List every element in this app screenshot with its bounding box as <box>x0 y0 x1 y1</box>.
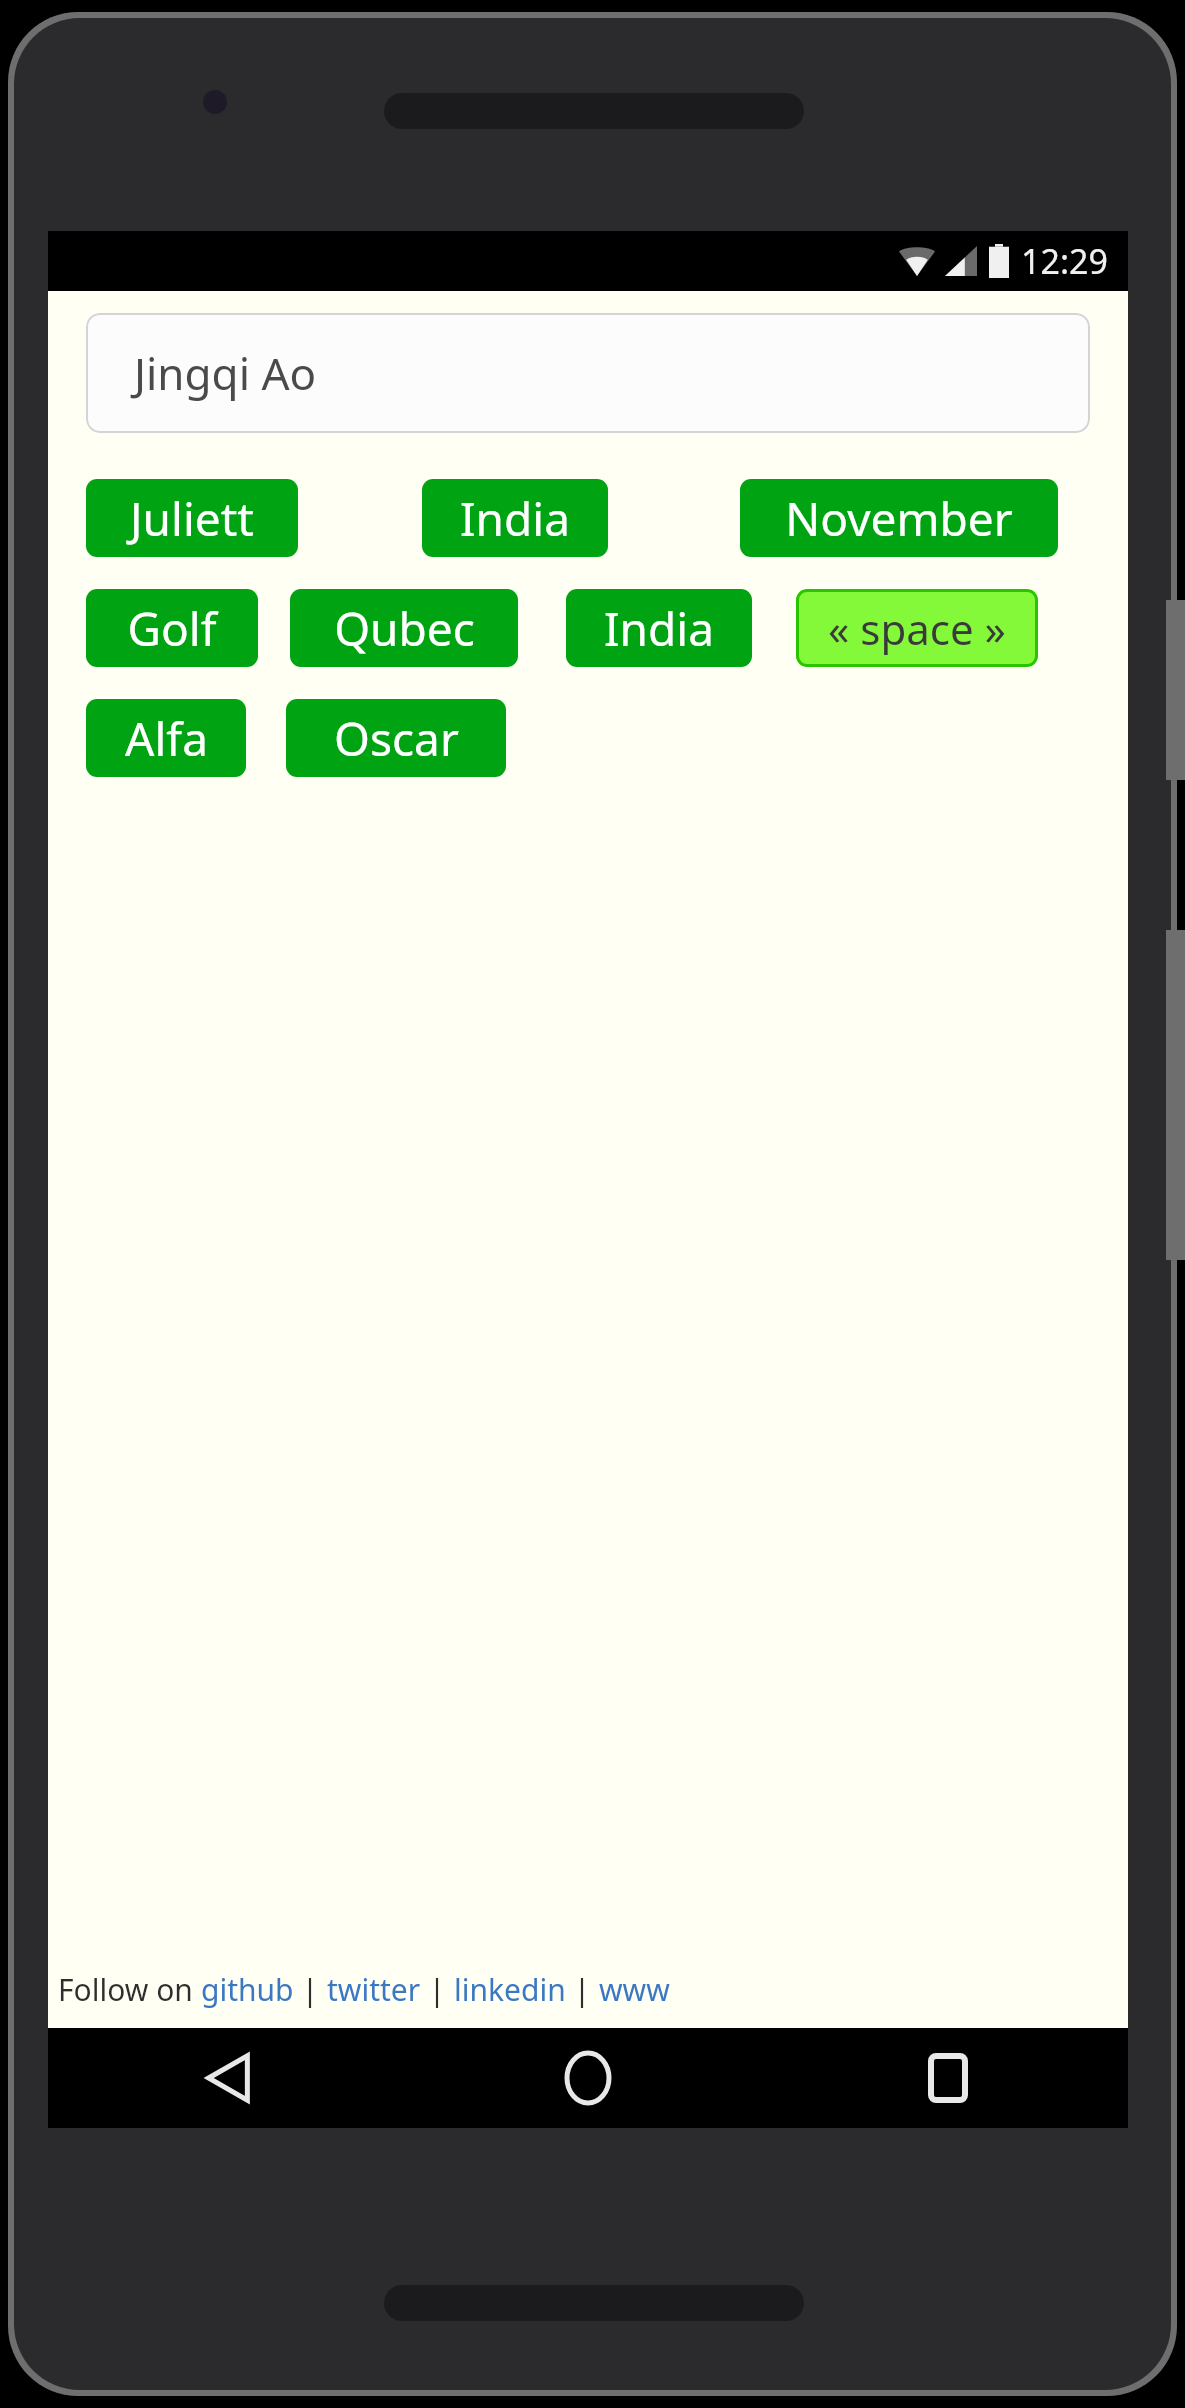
button[interactable]: Alfa <box>86 699 246 777</box>
staticText: Alfa <box>125 707 208 770</box>
staticText: | <box>421 1969 454 2010</box>
staticText: Golf <box>127 597 217 660</box>
staticText: Qubec <box>334 597 475 660</box>
button[interactable]: India <box>422 479 608 557</box>
button[interactable]: Juliett <box>86 479 298 557</box>
button[interactable]: Golf <box>86 589 258 667</box>
button[interactable]: Jingqi Ao <box>86 313 1090 433</box>
staticText: Juliett <box>130 487 254 550</box>
button[interactable]: Recent apps <box>768 2028 1128 2128</box>
staticText: November <box>785 487 1013 550</box>
staticText: « space » <box>828 600 1006 657</box>
staticText: www <box>599 1969 670 2010</box>
staticText: 12:29 <box>1021 238 1108 284</box>
staticText: Oscar <box>334 707 459 770</box>
staticText: Jingqi Ao <box>134 343 317 403</box>
staticText: twitter <box>327 1969 421 2010</box>
button[interactable]: linkedin <box>454 1969 566 2010</box>
staticText: India <box>460 487 570 550</box>
staticText: | <box>566 1969 599 2010</box>
staticText: India <box>604 597 714 660</box>
button[interactable]: www <box>599 1969 670 2010</box>
button[interactable]: github <box>201 1969 294 2010</box>
button[interactable]: India <box>566 589 752 667</box>
staticText: linkedin <box>454 1969 566 2010</box>
staticText: | <box>294 1969 327 2010</box>
button[interactable]: Back <box>48 2028 408 2128</box>
staticText: github <box>201 1969 294 2010</box>
button[interactable]: November <box>740 479 1058 557</box>
button[interactable]: « space » <box>796 589 1038 667</box>
button[interactable]: twitter <box>327 1969 421 2010</box>
staticText: Follow on <box>58 1969 201 2010</box>
button[interactable]: Qubec <box>290 589 518 667</box>
button[interactable]: Oscar <box>286 699 506 777</box>
button[interactable]: Home <box>408 2028 768 2128</box>
